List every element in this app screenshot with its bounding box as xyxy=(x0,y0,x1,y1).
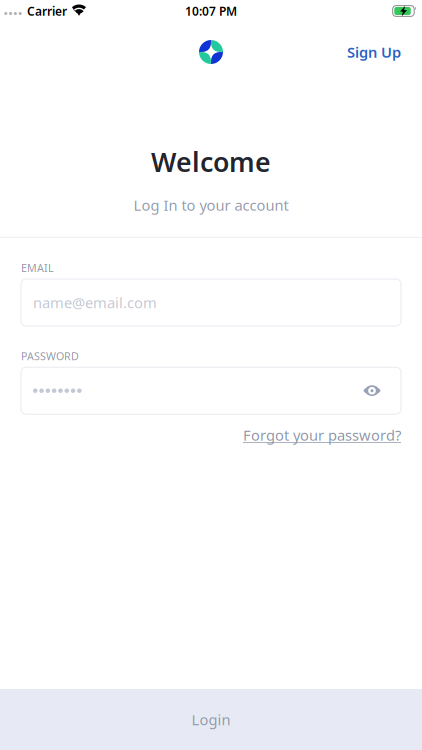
staticText: EMAIL xyxy=(21,261,54,275)
staticText: name@email.com xyxy=(33,293,157,312)
button[interactable]: Show password xyxy=(351,370,393,411)
staticText: Sign Up xyxy=(347,42,401,62)
staticText: PASSWORD xyxy=(21,349,79,363)
staticText: Login xyxy=(191,710,230,729)
staticText: Welcome xyxy=(151,144,271,179)
staticText: Carrier xyxy=(27,3,67,19)
button[interactable]: Forgot your password? xyxy=(243,425,401,445)
staticText: Log In to your account xyxy=(133,195,288,215)
staticText: Forgot your password? xyxy=(243,425,401,445)
button[interactable]: Login xyxy=(0,689,422,750)
staticText: 10:07 PM xyxy=(185,3,237,19)
button[interactable]: Sign Up xyxy=(326,32,422,72)
